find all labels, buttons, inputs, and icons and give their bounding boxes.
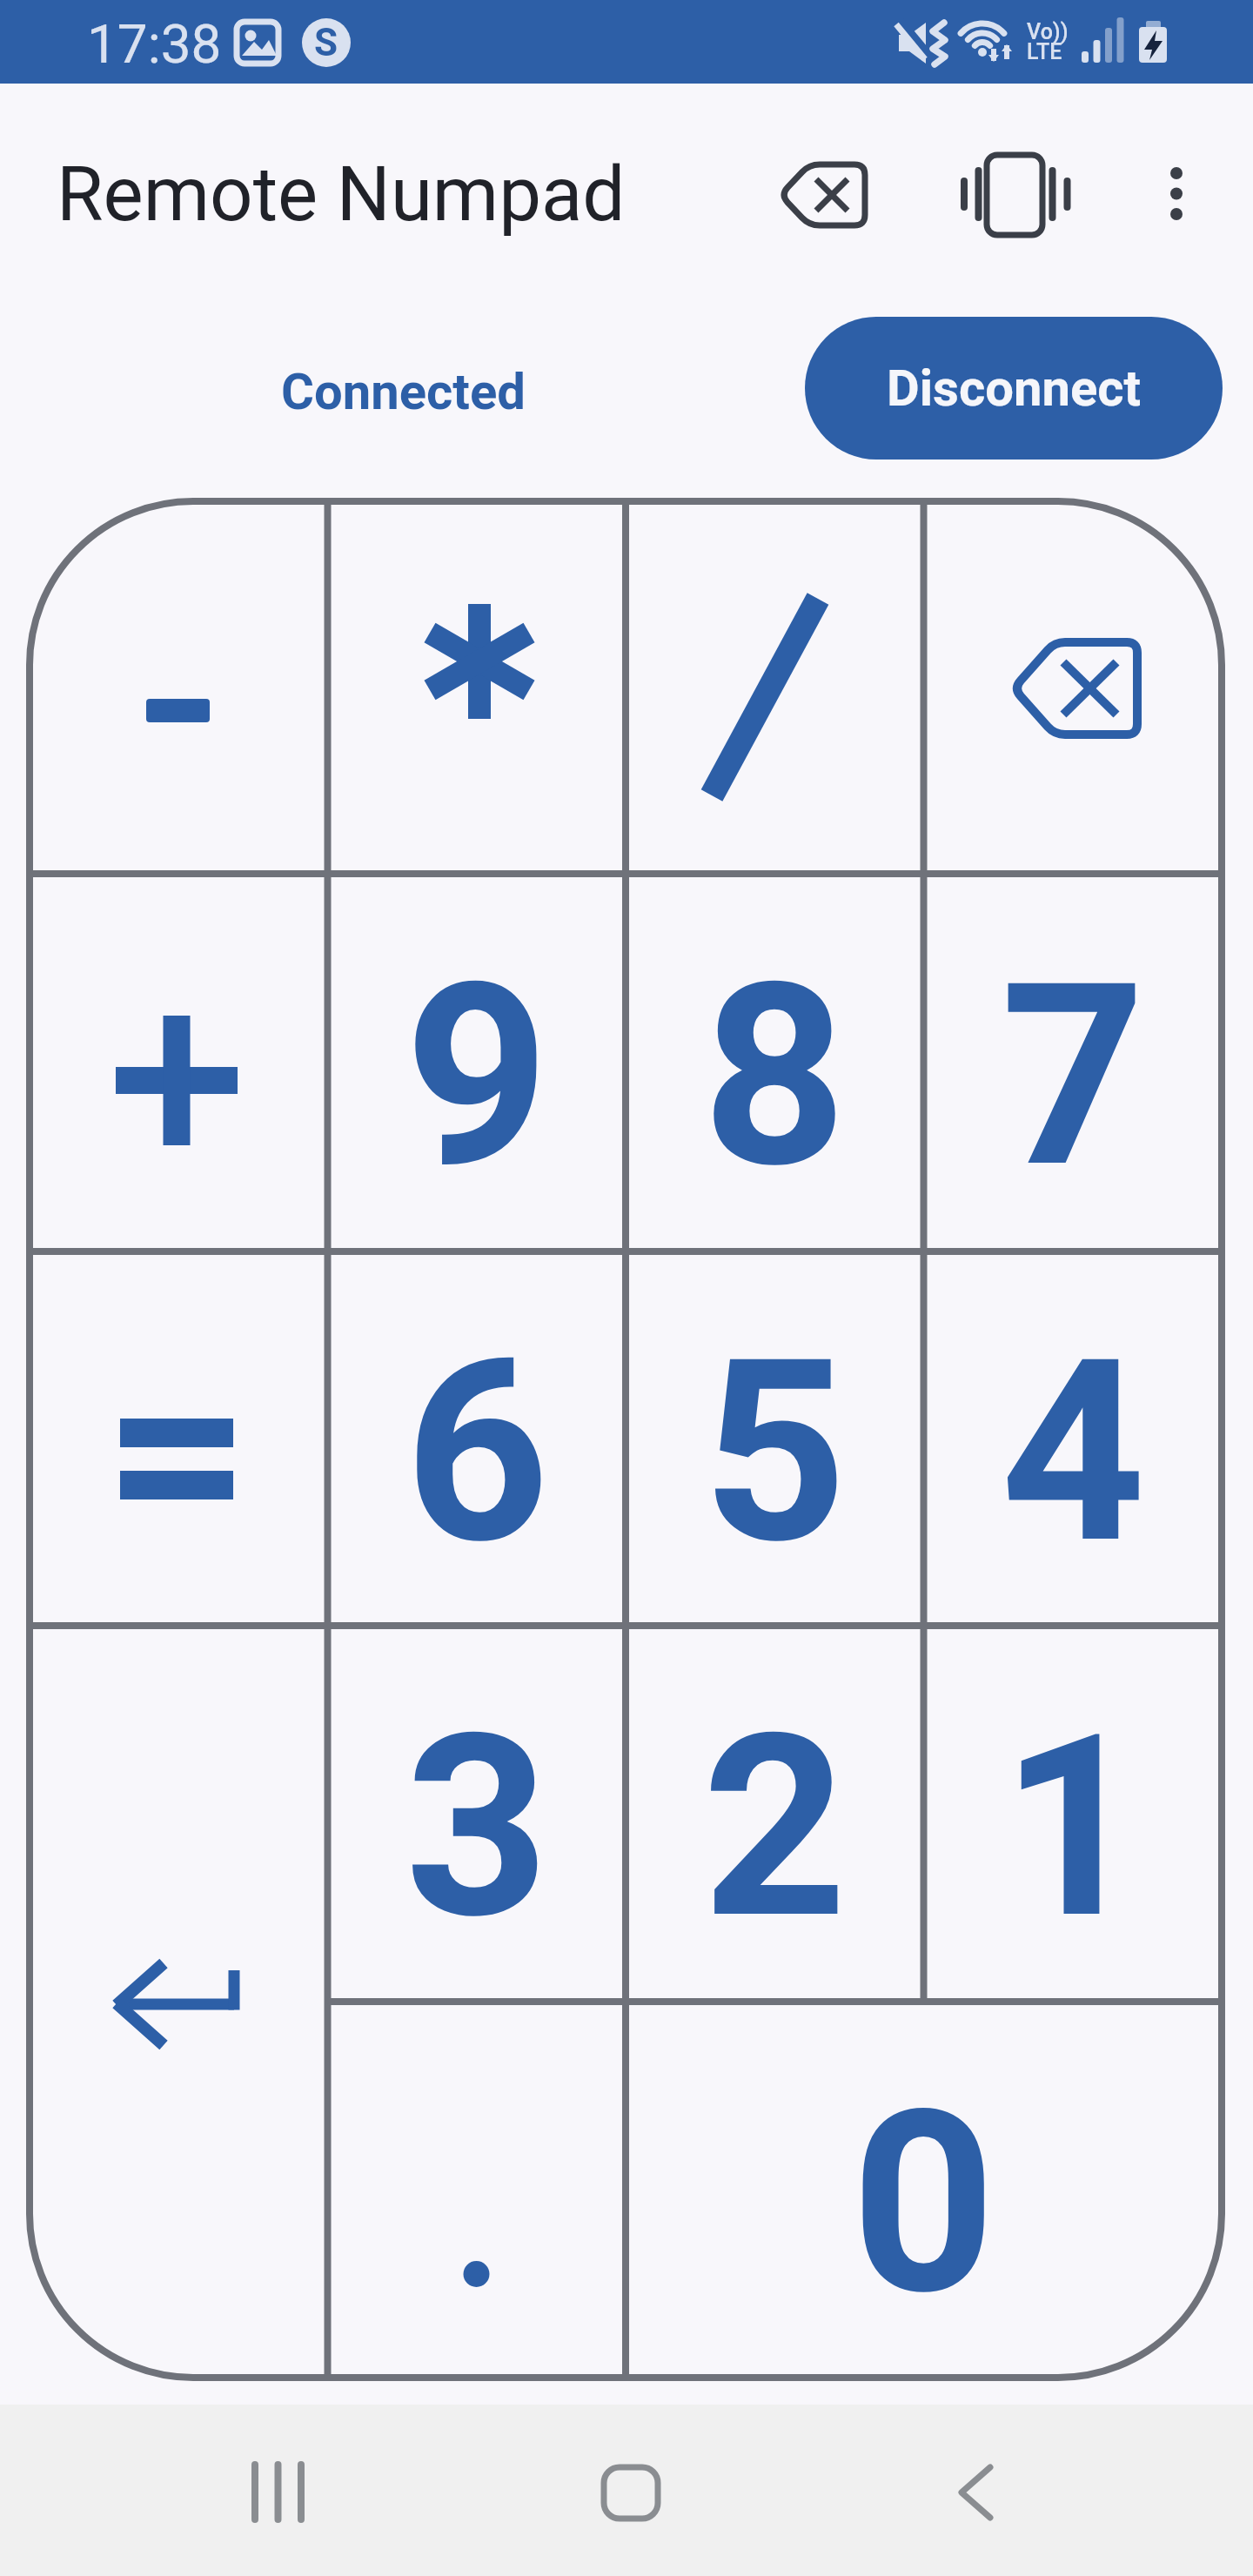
staticText: Vo)) bbox=[1027, 19, 1069, 44]
staticText: 6 bbox=[405, 1305, 550, 1600]
staticText: Disconnect bbox=[887, 359, 1142, 418]
staticText: Connected bbox=[281, 362, 526, 421]
staticText: 2 bbox=[702, 1680, 848, 1976]
staticText: 3 bbox=[405, 1680, 550, 1976]
staticText: 8 bbox=[702, 929, 848, 1224]
staticText: 9 bbox=[405, 929, 550, 1224]
staticText: 1 bbox=[1001, 1680, 1146, 1976]
staticText: LTE bbox=[1027, 39, 1062, 64]
staticText: 0 bbox=[851, 2056, 996, 2351]
staticText: S bbox=[314, 20, 338, 65]
staticText: 4 bbox=[1001, 1305, 1146, 1600]
staticText: 5 bbox=[702, 1305, 848, 1600]
staticText: 7 bbox=[1001, 929, 1146, 1224]
staticText: Remote Numpad bbox=[57, 150, 626, 238]
staticText: 17:38 bbox=[87, 12, 222, 76]
